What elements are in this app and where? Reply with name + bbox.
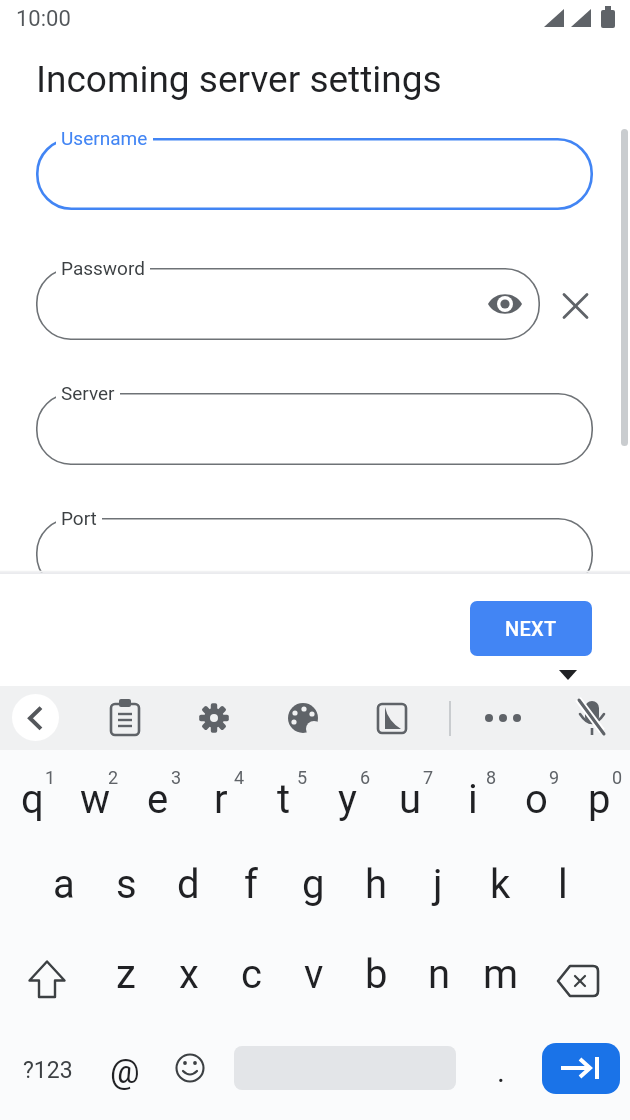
staticText: p xyxy=(588,776,611,823)
staticText: Username xyxy=(61,127,148,149)
staticText: Password xyxy=(61,257,145,279)
button[interactable] xyxy=(163,1023,217,1113)
button[interactable]: l xyxy=(532,839,594,929)
button[interactable] xyxy=(12,694,59,741)
button[interactable]: b xyxy=(345,929,407,1019)
button[interactable]: o xyxy=(505,754,567,844)
staticText: t xyxy=(277,776,291,823)
button[interactable]: NEXT xyxy=(470,601,592,656)
staticText: 6 xyxy=(360,767,371,788)
button[interactable]: z xyxy=(95,929,157,1019)
button[interactable]: a xyxy=(33,839,95,929)
staticText: ?123 xyxy=(23,1057,73,1084)
staticText: Port xyxy=(61,507,97,529)
button[interactable]: t xyxy=(253,754,315,844)
button[interactable]: y xyxy=(316,754,378,844)
staticText: v xyxy=(304,951,324,998)
button[interactable]: u xyxy=(379,754,441,844)
staticText: l xyxy=(558,861,568,908)
staticText: Incoming server settings xyxy=(36,58,442,101)
staticText: q xyxy=(21,776,44,823)
staticText: b xyxy=(365,951,388,998)
button[interactable]: r xyxy=(190,754,252,844)
staticText: 8 xyxy=(486,767,497,788)
button[interactable]: e xyxy=(127,754,189,844)
staticText: d xyxy=(177,861,200,908)
button[interactable] xyxy=(188,692,240,744)
button[interactable] xyxy=(36,138,593,210)
staticText: u xyxy=(399,776,422,823)
staticText: 9 xyxy=(549,767,560,788)
button[interactable]: c xyxy=(220,929,282,1019)
button[interactable]: w xyxy=(64,754,126,844)
staticText: @ xyxy=(110,1052,140,1091)
staticText: k xyxy=(490,861,511,908)
button[interactable]: p xyxy=(568,754,630,844)
button[interactable]: @ xyxy=(95,1026,155,1116)
staticText: y xyxy=(338,776,357,823)
button[interactable]: x xyxy=(158,929,220,1019)
button[interactable]: ?123 xyxy=(13,1025,83,1115)
button[interactable]: q xyxy=(1,754,63,844)
staticText: 5 xyxy=(297,767,308,788)
staticText: o xyxy=(525,776,548,823)
button[interactable]: j xyxy=(407,839,469,929)
button[interactable] xyxy=(366,692,418,744)
button[interactable]: i xyxy=(442,754,504,844)
button[interactable]: . xyxy=(476,1026,526,1116)
staticText: g xyxy=(302,861,325,908)
staticText: 0 xyxy=(612,767,623,788)
button[interactable]: d xyxy=(157,839,219,929)
staticText: 7 xyxy=(423,767,434,788)
staticText: 4 xyxy=(234,767,245,788)
staticText: Server xyxy=(61,382,115,404)
button[interactable] xyxy=(566,692,618,744)
staticText: 10:00 xyxy=(16,6,71,32)
staticText: i xyxy=(468,776,478,823)
button[interactable] xyxy=(542,1043,620,1094)
staticText: m xyxy=(483,951,519,998)
staticText: r xyxy=(214,776,228,823)
button[interactable]: k xyxy=(469,839,531,929)
staticText: c xyxy=(241,951,262,998)
staticText: s xyxy=(116,861,137,908)
button[interactable] xyxy=(99,692,151,744)
button[interactable] xyxy=(277,692,329,744)
staticText: f xyxy=(244,861,258,908)
staticText: a xyxy=(53,861,75,908)
button[interactable]: s xyxy=(95,839,157,929)
button[interactable]: h xyxy=(345,839,407,929)
button[interactable] xyxy=(547,936,609,1026)
button[interactable] xyxy=(555,286,595,326)
button[interactable]: f xyxy=(220,839,282,929)
staticText: w xyxy=(80,776,111,823)
staticText: . xyxy=(497,1054,505,1089)
staticText: 3 xyxy=(171,767,182,788)
staticText: h xyxy=(365,861,388,908)
button[interactable]: v xyxy=(283,929,345,1019)
staticText: NEXT xyxy=(505,617,557,640)
staticText: x xyxy=(179,951,199,998)
staticText: 1 xyxy=(45,767,56,788)
button[interactable] xyxy=(485,284,525,324)
button[interactable]: n xyxy=(408,929,470,1019)
staticText: z xyxy=(116,951,136,998)
button[interactable] xyxy=(36,393,593,465)
button[interactable]: m xyxy=(470,929,532,1019)
button[interactable] xyxy=(36,268,540,340)
button[interactable] xyxy=(16,936,78,1026)
staticText: 2 xyxy=(108,767,119,788)
button[interactable]: g xyxy=(282,839,344,929)
staticText: j xyxy=(433,861,443,908)
button[interactable] xyxy=(36,518,593,590)
button[interactable] xyxy=(477,692,529,744)
staticText: n xyxy=(428,951,451,998)
staticText: e xyxy=(147,776,169,823)
